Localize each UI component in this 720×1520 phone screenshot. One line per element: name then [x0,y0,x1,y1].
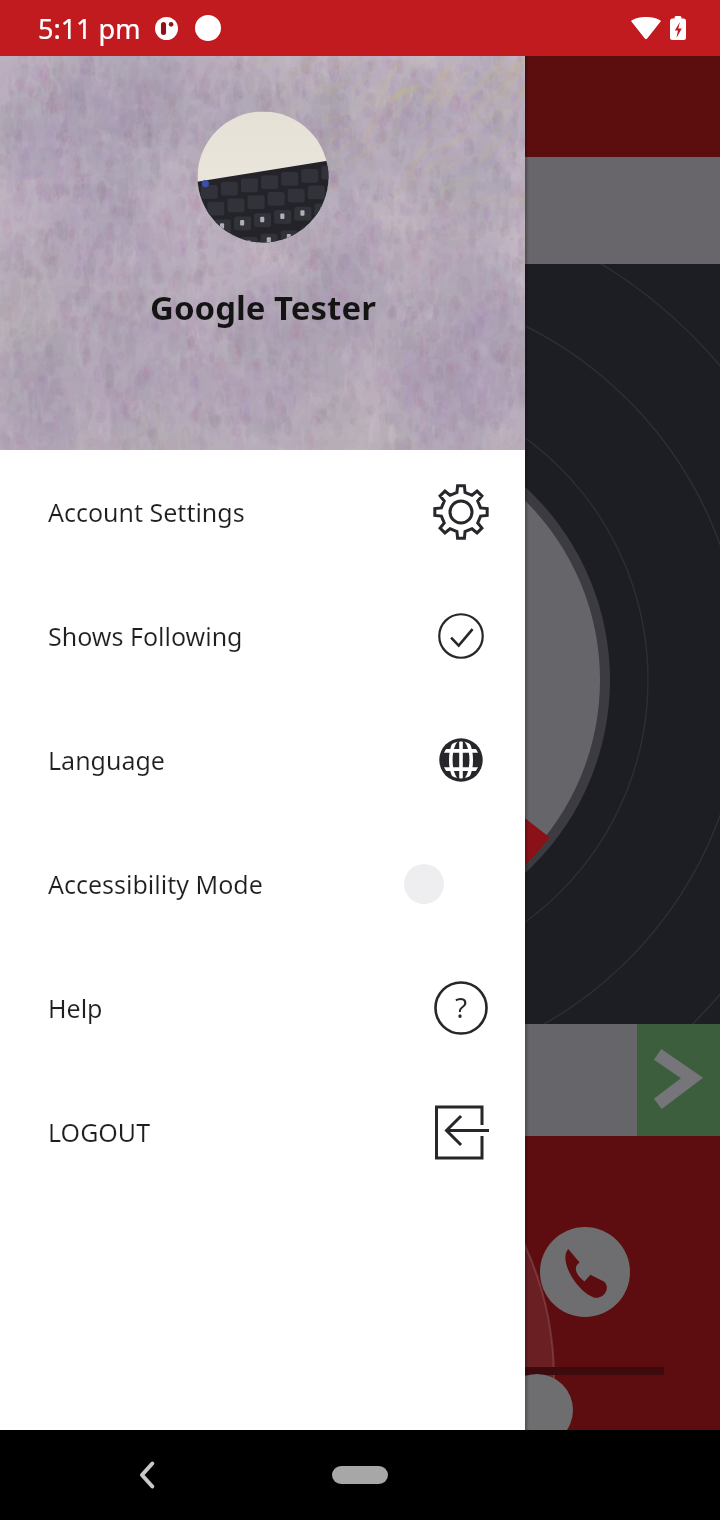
staticText: ? [455,988,468,1026]
staticText: Google Tester [150,285,376,330]
button[interactable]: Accessibility Mode toggle [396,855,490,913]
button[interactable]: Help [0,946,525,1070]
button[interactable]: Home [300,1453,420,1497]
button[interactable]: Google Tester [0,56,525,450]
staticText: Help [48,991,103,1025]
staticText: Account Settings [48,495,245,529]
staticText: LOGOUT [48,1115,151,1149]
button[interactable]: Account Settings [0,450,525,574]
button[interactable]: Language [0,698,525,822]
button[interactable]: Back [119,1447,175,1503]
button[interactable]: Shows Following [0,574,525,698]
staticText: 5:11 pm [38,10,141,47]
button[interactable]: LOGOUT [0,1070,525,1194]
staticText: Accessibility Mode [48,867,263,901]
staticText: Shows Following [48,619,243,653]
button[interactable]: Accessibility Mode [0,822,525,946]
staticText: Language [48,743,165,777]
